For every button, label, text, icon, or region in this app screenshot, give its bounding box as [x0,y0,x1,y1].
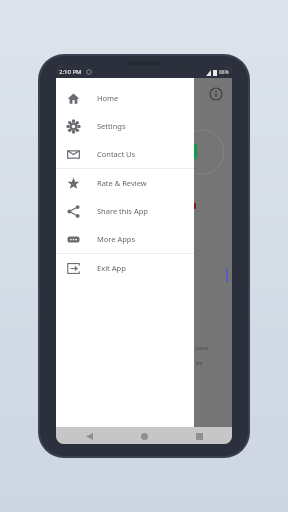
button[interactable]: Contact Us [56,140,194,168]
staticText: ours [196,344,209,352]
button[interactable]: Exit App [56,254,194,282]
staticText: Exit App [97,263,126,273]
button[interactable]: Back [82,429,96,443]
staticText: Rate & Review [97,178,147,188]
button[interactable]: Info [208,86,224,102]
staticText: Settings [97,121,126,131]
staticText: Share this App [97,206,148,216]
staticText: 88% [219,69,229,76]
button[interactable]: Settings [56,112,194,140]
staticText: More Apps [97,234,136,244]
staticText: Home [97,93,119,103]
button[interactable]: More Apps [56,225,194,253]
button[interactable]: Recent apps [192,429,206,443]
staticText: es [196,359,203,367]
button[interactable]: Home [137,429,151,443]
staticText: Contact Us [97,149,136,159]
button[interactable]: Share this App [56,197,194,225]
button[interactable]: Home [56,84,194,112]
staticText: 2:10 PM [59,68,82,76]
button[interactable]: Rate & Review [56,169,194,197]
